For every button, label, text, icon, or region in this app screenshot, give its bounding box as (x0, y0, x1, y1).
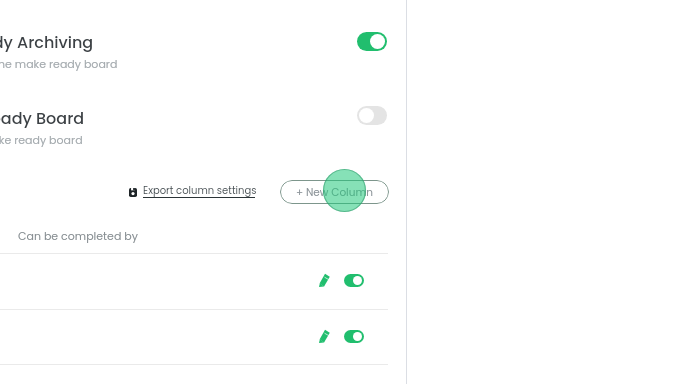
button[interactable]: Edit (0, 254, 388, 309)
staticText: Export column settings (143, 183, 257, 197)
button[interactable]: Enabled, on (344, 274, 364, 287)
button[interactable]: Make Ready Board (0, 100, 389, 162)
button[interactable]: Edit (315, 327, 333, 345)
staticText: Auto Ready Archiving (0, 31, 94, 53)
button[interactable]: + New Column (280, 180, 389, 204)
button[interactable]: Auto Ready Archiving (0, 24, 389, 86)
button[interactable]: Edit (315, 271, 333, 289)
staticText: Can be completed by (18, 228, 138, 243)
button[interactable]: Enabled, on (344, 330, 364, 343)
staticText: the make ready board (0, 56, 118, 71)
button[interactable]: Auto ready archiving, on (357, 32, 387, 51)
button[interactable]: Make ready board, off (357, 106, 387, 125)
staticText: + New Column (296, 185, 373, 200)
staticText: Make Ready Board (0, 107, 85, 129)
button[interactable]: Export column settings (129, 183, 257, 197)
button[interactable]: Edit (0, 310, 388, 364)
staticText: make ready board (0, 132, 83, 147)
